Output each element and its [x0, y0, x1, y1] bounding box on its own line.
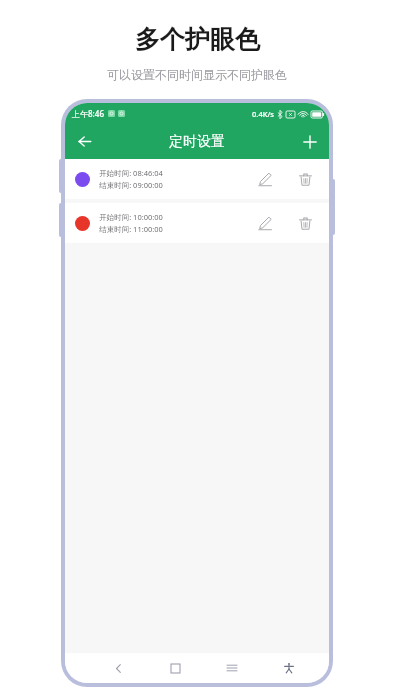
- staticText: 可以设置不同时间显示不同护眼色: [107, 67, 287, 82]
- staticText: 上午8:46: [72, 108, 104, 119]
- staticText: 多个护眼色: [135, 24, 260, 55]
- staticText: 定时设置: [169, 133, 225, 151]
- button[interactable]: 开始时间: 10:00:00: [65, 203, 329, 243]
- staticText: 开始时间: 10:00:00: [99, 212, 163, 222]
- button[interactable]: 菜单: [217, 653, 247, 683]
- button[interactable]: 添加: [291, 124, 329, 159]
- button[interactable]: 删除: [291, 209, 319, 237]
- button[interactable]: 开始时间: 08:46:04: [65, 159, 329, 199]
- button[interactable]: 编辑: [251, 165, 279, 193]
- button[interactable]: 无障碍: [274, 653, 304, 683]
- button[interactable]: 返回: [65, 124, 103, 159]
- staticText: 结束时间: 11:00:00: [99, 224, 163, 234]
- button[interactable]: 返回: [103, 653, 133, 683]
- button[interactable]: 主页: [160, 653, 190, 683]
- button[interactable]: 编辑: [251, 209, 279, 237]
- button[interactable]: 删除: [291, 165, 319, 193]
- staticText: 开始时间: 08:46:04: [99, 168, 163, 178]
- staticText: 结束时间: 09:00:00: [99, 180, 163, 190]
- staticText: 0.4K/s: [252, 109, 274, 119]
